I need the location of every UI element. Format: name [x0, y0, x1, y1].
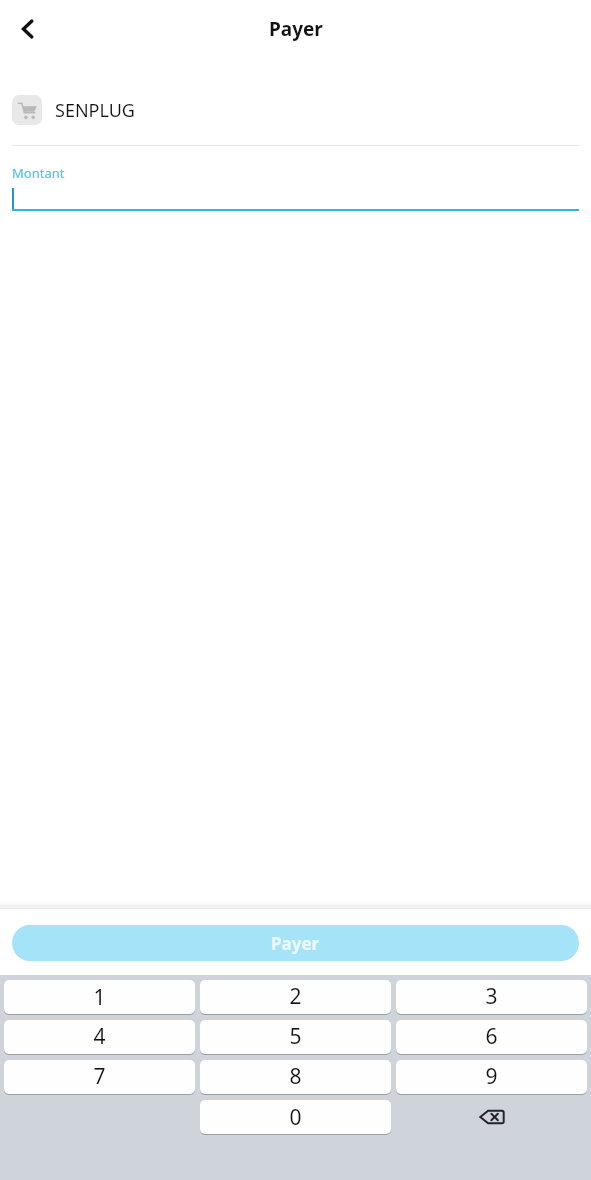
staticText: 5 [289, 1022, 302, 1051]
staticText: 6 [485, 1022, 498, 1051]
button[interactable]: 2 [200, 980, 391, 1014]
button[interactable]: Back [4, 5, 52, 53]
staticText: 1 [93, 983, 106, 1012]
button[interactable]: Payer [12, 925, 579, 961]
staticText: 7 [93, 1062, 106, 1091]
button[interactable]: 8 [200, 1060, 391, 1094]
button[interactable] [12, 188, 579, 209]
button[interactable]: 9 [396, 1060, 587, 1094]
button[interactable]: 3 [396, 980, 587, 1014]
staticText: 3 [485, 982, 498, 1011]
staticText: 2 [289, 982, 302, 1011]
button[interactable]: 7 [4, 1060, 195, 1094]
staticText: 8 [289, 1062, 302, 1091]
button[interactable]: 1 [4, 980, 195, 1014]
staticText: 9 [485, 1062, 498, 1091]
button[interactable]: Delete [396, 1100, 587, 1134]
button[interactable]: SENPLUG [12, 95, 579, 125]
staticText: 4 [93, 1022, 106, 1051]
staticText: SENPLUG [55, 98, 135, 123]
button[interactable]: 6 [396, 1020, 587, 1054]
button[interactable]: 0 [200, 1100, 391, 1134]
staticText: Montant [12, 164, 65, 182]
staticText: Payer [271, 932, 320, 955]
button[interactable]: 5 [200, 1020, 391, 1054]
button[interactable]: 4 [4, 1020, 195, 1054]
staticText: Payer [269, 16, 323, 42]
staticText: 0 [289, 1103, 302, 1132]
